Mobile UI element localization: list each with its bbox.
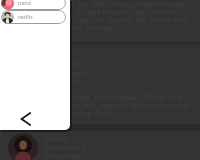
staticText: Ed Sheeran, Maroon 5, Sia, Khalid, Halse… [8,0,195,33]
button[interactable]: netflix [1,10,66,24]
staticText: netflix [18,14,33,21]
staticText: trend [18,0,31,7]
button[interactable]: Profile photo [8,133,38,160]
staticText: Following(s): 0 [47,69,91,78]
staticText: Post Malone, Khalid, Drake, Ariana Grand… [8,93,195,118]
button[interactable]: trend [1,0,66,10]
staticText: Post(s): 11 [47,78,79,87]
button[interactable]: Back [19,112,33,126]
staticText: Follower(s): 4 [47,60,88,69]
